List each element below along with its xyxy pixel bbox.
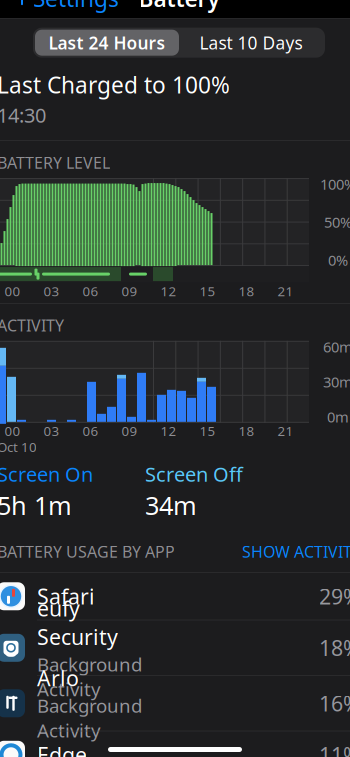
staticText: BATTERY LEVEL [0,152,110,173]
staticText: 00 [4,282,20,300]
staticText: Screen Off [145,461,243,487]
staticText: Screen On [0,461,93,487]
staticText: 5h 1m [0,488,72,522]
staticText: 09 [121,282,137,300]
staticText: Battery [138,0,219,13]
staticText: 15 [199,282,215,300]
staticText: BATTERY USAGE BY APP [0,541,175,562]
button[interactable]: eufy Security [0,620,350,676]
staticText: Edge [37,741,87,757]
staticText: Settings [33,0,119,13]
button[interactable]: Last 10 Days [179,30,323,56]
staticText: SHOW ACTIVITY [242,541,350,562]
button[interactable]: Safari [0,573,350,620]
button[interactable]: SHOW ACTIVITY [242,538,350,565]
staticText: 03 [43,422,59,440]
staticText: Safari [37,582,95,610]
staticText: 06 [82,422,98,440]
staticText: Last Charged to 100% [0,70,230,100]
staticText: 09 [121,422,137,440]
staticText: 18 [238,422,254,440]
staticText: 15 [199,422,215,440]
staticText: 06 [82,282,98,300]
button[interactable]: Arlo [0,676,350,731]
staticText: 34m [145,488,197,522]
staticText: 18% [319,634,350,662]
staticText: 12 [160,282,176,300]
staticText: 50% [324,212,350,232]
staticText: 16% [319,689,350,717]
staticText: 29% [319,582,350,610]
staticText: 60m [323,337,350,357]
staticText: 03 [43,282,59,300]
staticText: Background Activity [37,652,142,701]
button[interactable]: Edge [0,731,350,757]
staticText: Oct 10 [0,438,37,456]
staticText: 11% [319,741,350,757]
staticText: 00 [4,422,20,440]
staticText: 18 [238,282,254,300]
staticText: 0m [327,407,349,427]
staticText: Last 10 Days [199,31,302,54]
staticText: 0% [328,250,348,270]
staticText: Arlo [37,664,79,692]
staticText: eufy Security [37,594,118,651]
staticText: 14:30 [0,102,46,128]
staticText: 100% [320,174,350,194]
staticText: 21 [277,422,293,440]
button[interactable]: Settings [8,0,119,19]
staticText: ACTIVITY [0,315,64,336]
staticText: Last 24 Hours [48,31,165,54]
staticText: Background Activity [37,693,142,743]
staticText: 30m [323,372,350,392]
staticText: 21 [277,282,293,300]
staticText: 12 [160,422,176,440]
button[interactable]: Last 24 Hours [35,30,179,56]
